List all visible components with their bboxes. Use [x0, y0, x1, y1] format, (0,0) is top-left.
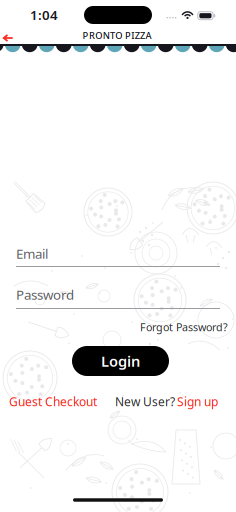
staticText: Password: [16, 286, 74, 303]
button[interactable]: Forgot Password?: [16, 318, 228, 336]
staticText: New User?: [115, 393, 175, 409]
staticText: Login: [101, 351, 140, 371]
staticText: Sign up: [177, 393, 218, 409]
button[interactable]: Back: [0, 28, 20, 48]
button[interactable]: Guest Checkout: [9, 392, 101, 410]
staticText: 1:04: [30, 6, 58, 24]
button[interactable]: Login: [72, 346, 169, 376]
staticText: Email: [16, 245, 48, 262]
button[interactable]: Sign up: [177, 392, 219, 410]
staticText: Forgot Password?: [140, 320, 228, 334]
staticText: Guest Checkout: [9, 393, 97, 409]
staticText: PRONTO PIZZA: [83, 29, 151, 42]
